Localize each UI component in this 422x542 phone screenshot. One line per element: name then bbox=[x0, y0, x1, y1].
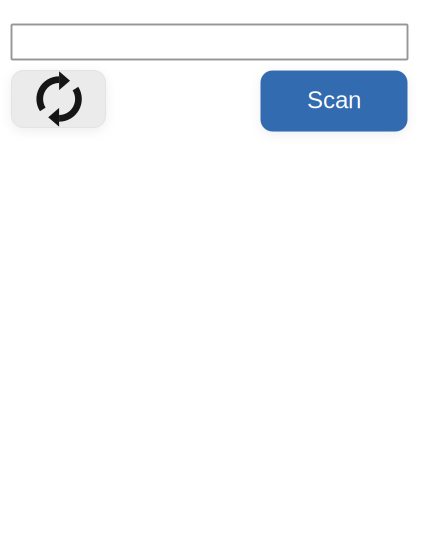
button[interactable]: Scan bbox=[260, 70, 407, 131]
button[interactable]: Sync bbox=[11, 70, 105, 127]
staticText: Scan bbox=[307, 87, 361, 113]
